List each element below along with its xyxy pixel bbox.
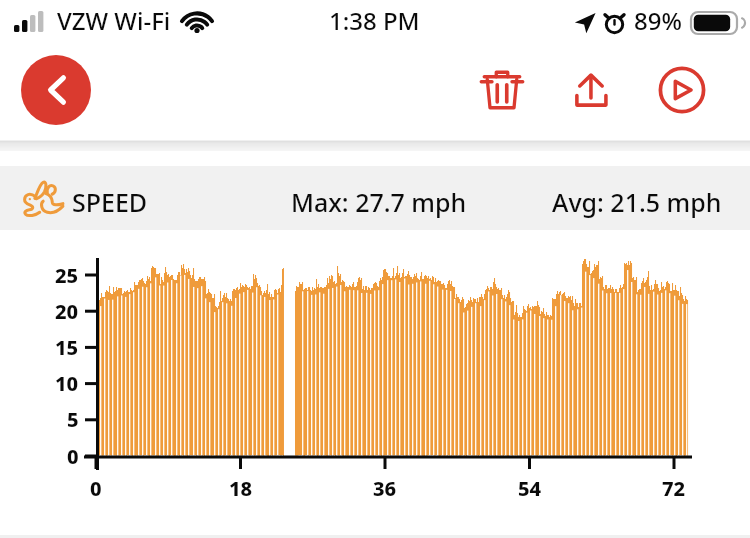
staticText: 10 (55, 370, 79, 397)
staticText: Avg: 21.5 mph (552, 185, 722, 219)
staticText: 36 (373, 475, 397, 502)
staticText: 1:38 PM (329, 4, 420, 37)
staticText: VZW Wi-Fi (57, 4, 171, 37)
staticText: 54 (518, 475, 542, 502)
staticText: 18 (229, 475, 253, 502)
staticText: 5 (67, 406, 79, 433)
button[interactable]: Back (21, 55, 91, 125)
staticText: 0 (67, 443, 79, 470)
staticText: 20 (55, 298, 79, 325)
staticText: 72 (662, 475, 686, 502)
staticText: Max: 27.7 mph (291, 185, 467, 219)
staticText: 0 (90, 475, 102, 502)
staticText: 15 (55, 334, 79, 361)
button[interactable]: Share (556, 54, 628, 126)
staticText: 25 (55, 262, 79, 289)
button[interactable]: Play (646, 54, 718, 126)
staticText: SPEED (72, 185, 148, 219)
staticText: 89% (634, 4, 682, 37)
button[interactable]: Delete (466, 54, 538, 126)
